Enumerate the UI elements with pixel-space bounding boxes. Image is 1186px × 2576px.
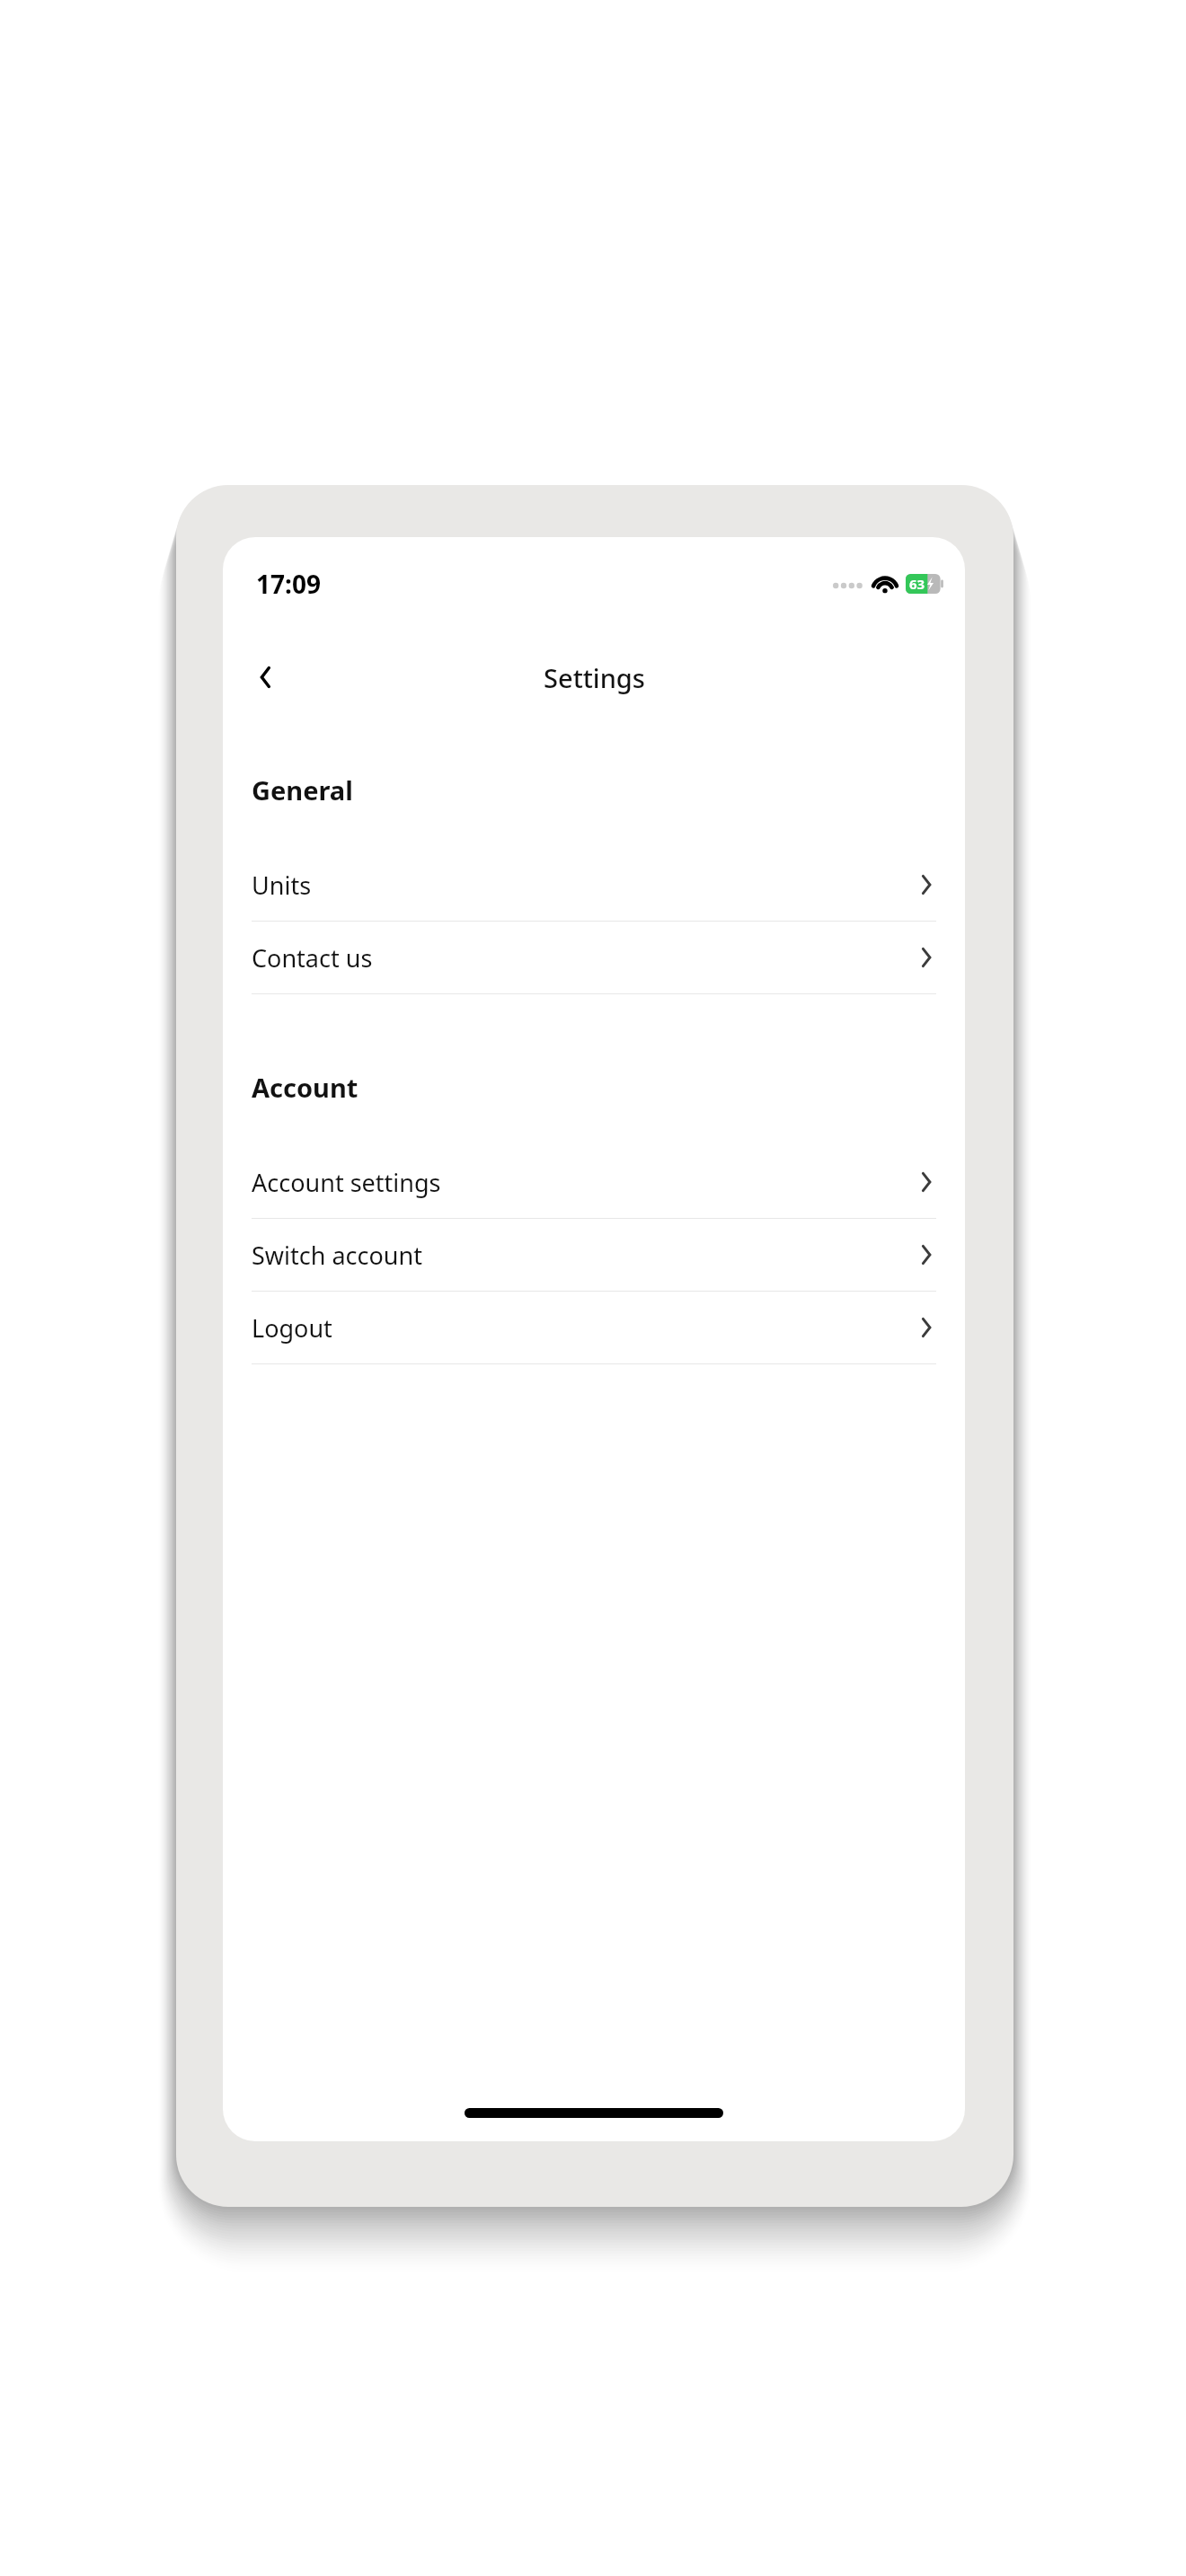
staticText: 17:09 <box>256 567 321 601</box>
button[interactable]: Contact us <box>223 922 965 993</box>
button[interactable]: Units <box>223 849 965 921</box>
button[interactable]: Switch account <box>223 1219 965 1291</box>
button[interactable]: Back <box>241 652 291 702</box>
button[interactable]: Account settings <box>223 1146 965 1218</box>
staticText: Settings <box>544 660 645 695</box>
staticText: Units <box>252 869 915 902</box>
staticText: 63 <box>909 575 925 593</box>
staticText: Logout <box>252 1311 915 1345</box>
staticText: Account settings <box>252 1166 915 1199</box>
staticText: Account <box>252 1070 358 1105</box>
staticText: Switch account <box>252 1239 915 1272</box>
staticText: Contact us <box>252 941 915 975</box>
button[interactable]: Logout <box>223 1292 965 1363</box>
staticText: General <box>252 772 353 807</box>
